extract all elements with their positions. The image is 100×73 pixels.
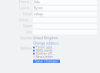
button[interactable]: Save changes xyxy=(33,60,60,63)
staticText: Ada xyxy=(34,0,40,4)
staticText: Options xyxy=(20,46,32,50)
button[interactable]: Newsletter xyxy=(33,56,64,58)
button[interactable]: City xyxy=(19,30,97,34)
button[interactable]: First name xyxy=(19,0,97,4)
staticText: Email updates xyxy=(36,45,55,49)
staticText: City xyxy=(26,30,32,34)
button[interactable]: Partner offers xyxy=(33,52,64,55)
staticText: United Kingdom xyxy=(33,36,58,40)
staticText: SMS alerts xyxy=(36,49,53,52)
button[interactable]: Street xyxy=(19,24,97,28)
staticText: Street xyxy=(23,24,32,28)
staticText: Change address xyxy=(33,41,59,45)
staticText: Email xyxy=(23,12,32,16)
staticText: First name xyxy=(19,0,32,4)
button[interactable]: Company xyxy=(19,18,97,22)
staticText: Company xyxy=(19,18,32,22)
staticText: Partner offers xyxy=(36,52,55,56)
button[interactable]: Email xyxy=(19,12,97,16)
staticText: Byron xyxy=(34,6,43,10)
button[interactable]: Change address xyxy=(33,41,59,45)
button[interactable]: Last name xyxy=(19,6,97,10)
staticText: Last name xyxy=(19,6,32,10)
button[interactable]: SMS alerts xyxy=(33,49,64,52)
staticText: Save changes xyxy=(35,59,58,63)
button[interactable]: Email updates xyxy=(33,46,64,49)
staticText: ada@ xyxy=(34,12,43,16)
staticText: Newsletter xyxy=(36,55,53,59)
staticText: Country xyxy=(20,36,32,40)
